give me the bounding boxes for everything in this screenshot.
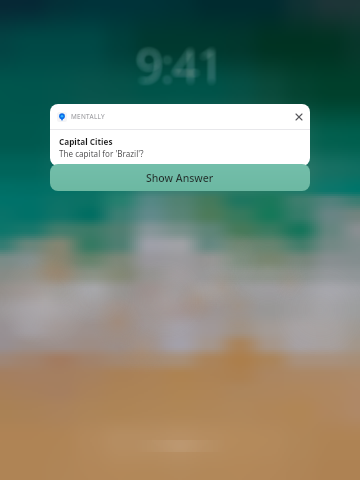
staticText: 9:41 xyxy=(134,38,221,98)
staticText: 9:41 xyxy=(139,34,226,94)
staticText: 9:41 xyxy=(135,31,222,91)
staticText: 9:41 xyxy=(137,33,224,93)
staticText: 9:41 xyxy=(137,31,224,91)
staticText: 9:41 xyxy=(141,34,228,94)
staticText: 9:41 xyxy=(140,34,227,94)
staticText: 9:41 xyxy=(141,36,228,96)
staticText: 9:41 xyxy=(139,33,226,93)
staticText: 9:41 xyxy=(141,33,228,93)
staticText: 9:41 xyxy=(138,34,225,94)
staticText: Show Answer xyxy=(146,171,214,185)
staticText: 9:41 xyxy=(135,38,222,98)
staticText: 9:41 xyxy=(140,32,227,92)
staticText: 9:41 xyxy=(139,38,226,98)
staticText: 9:41 xyxy=(136,31,223,91)
staticText: 9:41 xyxy=(141,35,228,95)
staticText: 9:41 xyxy=(133,34,220,94)
staticText: 9:41 xyxy=(136,34,223,94)
staticText: 9:41 xyxy=(138,33,225,93)
staticText: 9:41 xyxy=(136,36,223,96)
staticText: 9:41 xyxy=(137,39,224,99)
staticText: 9:41 xyxy=(136,32,223,92)
staticText: 9:41 xyxy=(138,35,225,95)
staticText: 9:41 xyxy=(138,31,225,91)
staticText: 9:41 xyxy=(137,34,224,94)
staticText: 9:41 xyxy=(137,35,224,95)
staticText: 9:41 xyxy=(133,35,220,95)
staticText: 9:41 xyxy=(138,36,225,96)
staticText: 9:41 xyxy=(136,38,223,98)
staticText: 9:41 xyxy=(138,38,225,98)
staticText: 9:41 xyxy=(135,37,222,97)
staticText: 9:41 xyxy=(134,33,221,93)
staticText: 9:41 xyxy=(139,31,226,91)
staticText: 9:41 xyxy=(139,36,226,96)
staticText: 9:41 xyxy=(136,39,223,99)
staticText: 9:41 xyxy=(140,35,227,95)
button[interactable]: Close xyxy=(292,110,306,124)
staticText: 9:41 xyxy=(133,37,220,97)
button[interactable]: Show Answer xyxy=(50,164,310,191)
staticText: 9:41 xyxy=(135,32,222,92)
staticText: 9:41 xyxy=(134,37,221,97)
staticText: 9:41 xyxy=(139,32,226,92)
staticText: 9:41 xyxy=(137,36,224,96)
staticText: 9:41 xyxy=(135,34,222,94)
staticText: 9:41 xyxy=(139,37,226,97)
staticText: 9:41 xyxy=(136,35,223,95)
staticText: 9:41 xyxy=(139,39,226,99)
staticText: 9:41 xyxy=(135,35,222,95)
staticText: 9:41 xyxy=(133,33,220,93)
staticText: 9:41 xyxy=(139,35,226,95)
staticText: 9:41 xyxy=(137,37,224,97)
staticText: 9:41 xyxy=(140,38,227,98)
staticText: 9:41 xyxy=(138,32,225,92)
staticText: The capital for 'Brazil'? xyxy=(59,148,144,159)
staticText: 9:41 xyxy=(136,37,223,97)
staticText: 9:41 xyxy=(134,36,221,96)
staticText: 9:41 xyxy=(140,37,227,97)
staticText: 9:41 xyxy=(134,35,221,95)
staticText: 9:41 xyxy=(134,34,221,94)
staticText: 9:41 xyxy=(135,39,222,99)
staticText: 9:41 xyxy=(137,32,224,92)
staticText: Capital Cities xyxy=(59,136,113,147)
staticText: 9:41 xyxy=(134,32,221,92)
staticText: MENTALLY xyxy=(71,112,105,121)
staticText: 9:41 xyxy=(135,33,222,93)
staticText: 9:41 xyxy=(133,36,220,96)
staticText: 9:41 xyxy=(140,36,227,96)
staticText: 9:41 xyxy=(137,38,224,98)
staticText: 9:41 xyxy=(135,36,222,96)
staticText: 9:41 xyxy=(140,33,227,93)
staticText: 9:41 xyxy=(138,37,225,97)
staticText: 9:41 xyxy=(138,39,225,99)
staticText: 9:41 xyxy=(136,33,223,93)
staticText: 9:41 xyxy=(141,37,228,97)
